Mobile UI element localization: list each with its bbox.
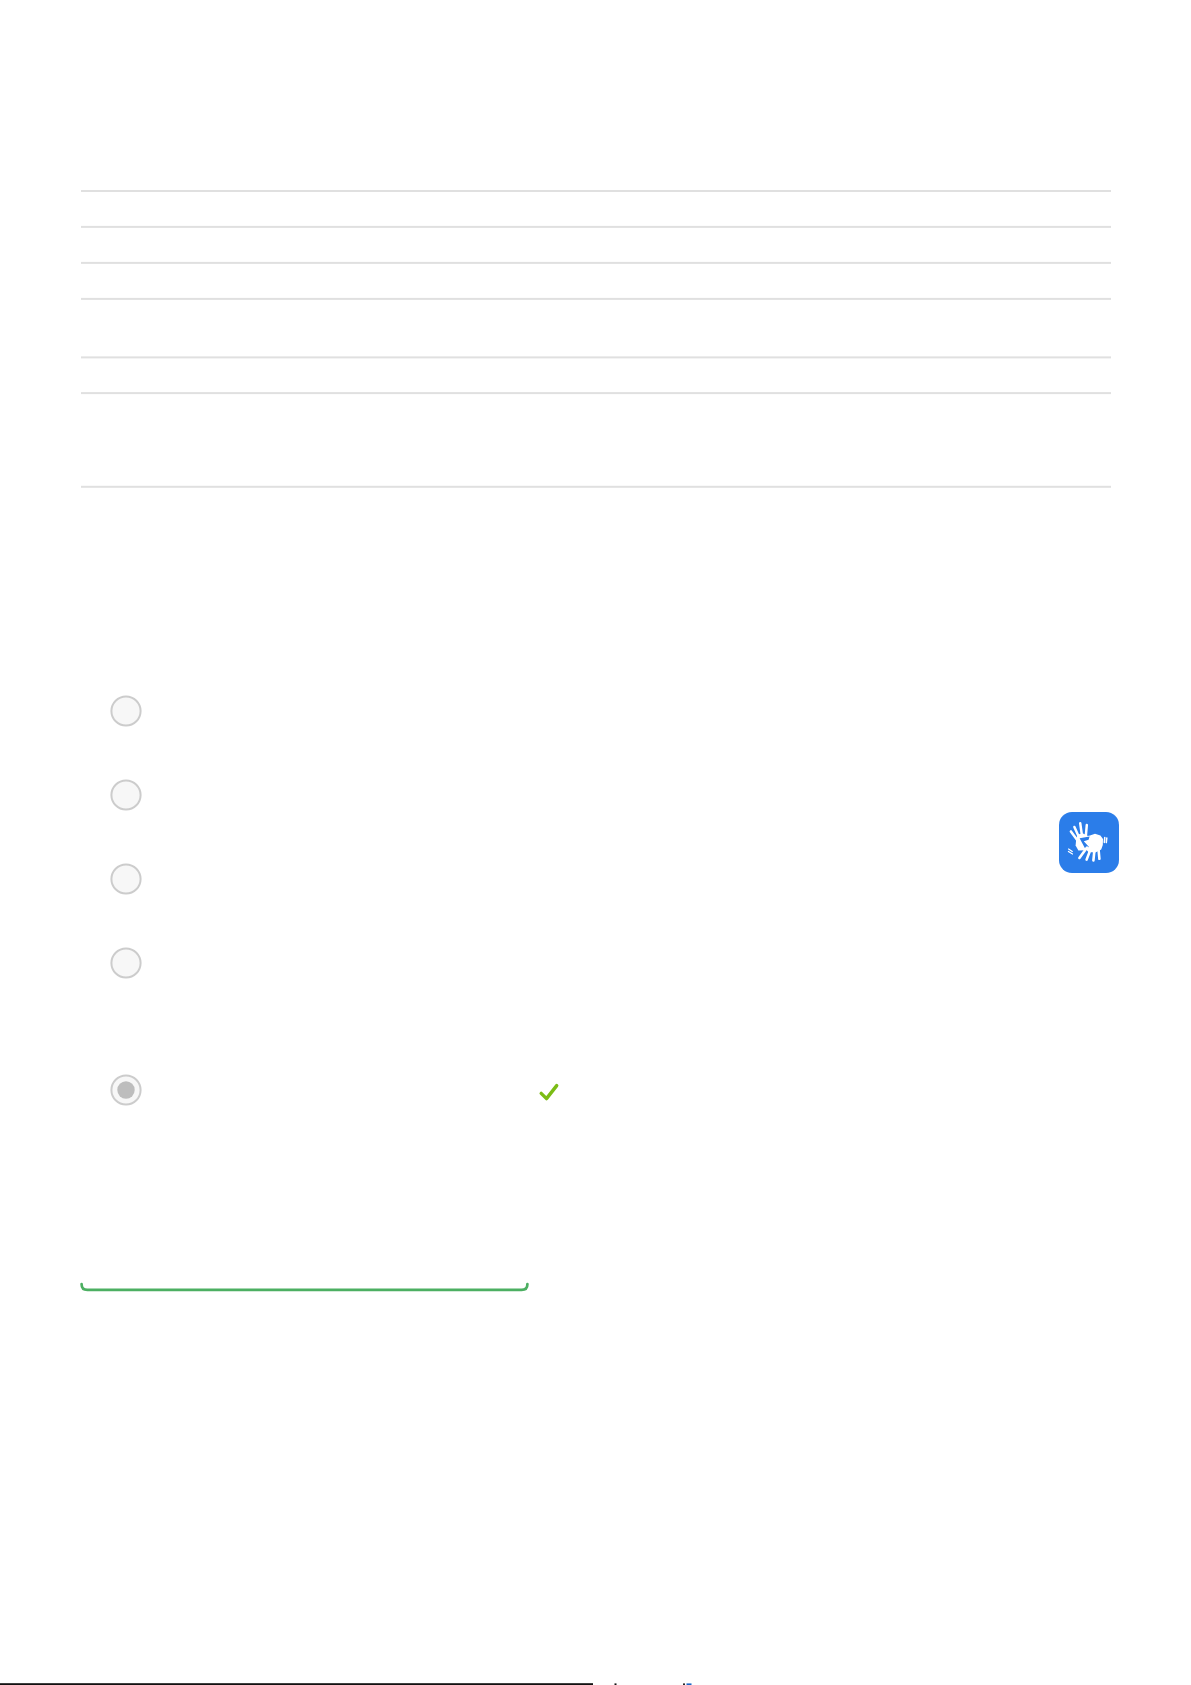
- button[interactable]: Option 4: [111, 948, 141, 978]
- button[interactable]: Option 5: [111, 1075, 141, 1105]
- button[interactable]: Sign language interpretation: [1059, 812, 1119, 873]
- button[interactable]: Option 2: [111, 780, 141, 810]
- button[interactable]: Option 3: [111, 864, 141, 894]
- button[interactable]: Option 1: [111, 696, 141, 726]
